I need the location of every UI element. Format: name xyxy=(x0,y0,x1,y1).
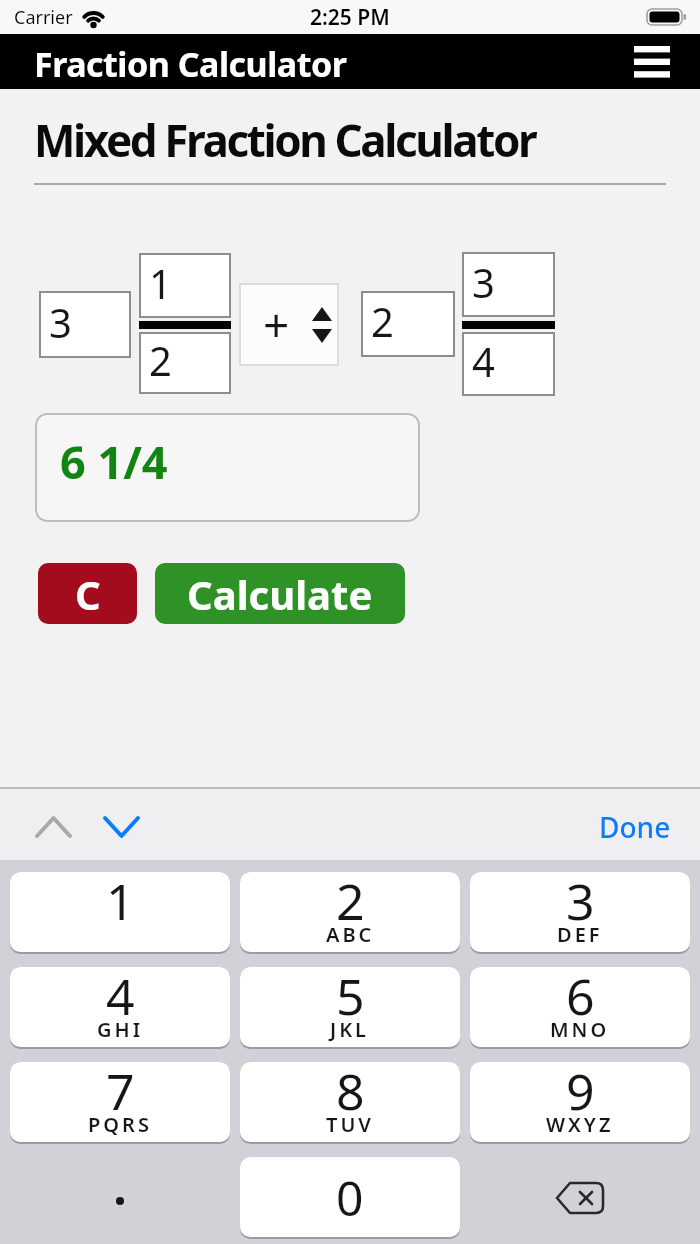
button[interactable] xyxy=(98,810,145,843)
staticText: 2 xyxy=(336,872,365,935)
button[interactable]: 5 xyxy=(240,967,460,1049)
staticText: Mixed Fraction Calculator xyxy=(34,110,536,170)
button[interactable]: Calculate xyxy=(155,563,405,624)
button[interactable]: 6 xyxy=(470,967,690,1049)
staticText: 2 xyxy=(149,333,172,387)
staticText: 2 xyxy=(371,294,394,348)
staticText: Carrier xyxy=(14,5,73,30)
button[interactable]: 3 xyxy=(470,872,690,954)
button[interactable]: 4 xyxy=(462,332,555,396)
staticText: 3 xyxy=(566,872,595,935)
staticText: Calculate xyxy=(187,567,373,621)
staticText: GHI xyxy=(97,1016,144,1043)
button[interactable]: C xyxy=(38,563,137,624)
staticText: 4 xyxy=(472,334,495,388)
staticText: 7 xyxy=(106,1062,135,1125)
staticText: 3 xyxy=(49,295,72,349)
staticText: 4 xyxy=(106,967,135,1030)
staticText: JKL xyxy=(330,1016,370,1043)
staticText: Done xyxy=(599,808,671,846)
staticText: ABC xyxy=(326,921,375,948)
button[interactable]: 4 xyxy=(10,967,230,1049)
button[interactable]: 8 xyxy=(240,1062,460,1144)
button[interactable] xyxy=(30,810,77,843)
button[interactable] xyxy=(470,1157,690,1239)
button[interactable] xyxy=(634,46,670,78)
staticText: C xyxy=(75,567,101,621)
button[interactable]: 3 xyxy=(39,291,131,358)
button[interactable]: + xyxy=(239,283,339,366)
button[interactable]: 1 xyxy=(10,872,230,954)
staticText: 5 xyxy=(336,967,365,1030)
staticText: DEF xyxy=(557,921,603,948)
staticText: PQRS xyxy=(88,1111,152,1138)
button[interactable] xyxy=(10,1157,230,1239)
button[interactable]: Done xyxy=(599,805,671,843)
staticText: WXYZ xyxy=(546,1111,614,1138)
staticText: 6 xyxy=(566,967,595,1030)
button[interactable]: 0 xyxy=(240,1157,460,1239)
staticText: Fraction Calculator xyxy=(34,41,347,87)
staticText: 2:25 PM xyxy=(310,3,390,32)
staticText: 6 1/4 xyxy=(60,431,168,492)
staticText: + xyxy=(263,293,290,356)
staticText: 9 xyxy=(566,1062,595,1125)
button[interactable]: 2 xyxy=(240,872,460,954)
staticText: 1 xyxy=(149,256,172,310)
staticText: 0 xyxy=(336,1165,364,1230)
button[interactable]: 2 xyxy=(139,332,231,394)
staticText: 3 xyxy=(472,255,495,309)
button[interactable]: 3 xyxy=(462,252,555,317)
button[interactable]: 2 xyxy=(361,291,455,357)
staticText: 8 xyxy=(336,1062,365,1125)
staticText: MNO xyxy=(550,1016,610,1043)
button[interactable]: 1 xyxy=(139,253,231,318)
staticText: TUV xyxy=(326,1111,374,1138)
button[interactable]: 9 xyxy=(470,1062,690,1144)
button[interactable]: 7 xyxy=(10,1062,230,1144)
staticText: 1 xyxy=(106,872,135,935)
